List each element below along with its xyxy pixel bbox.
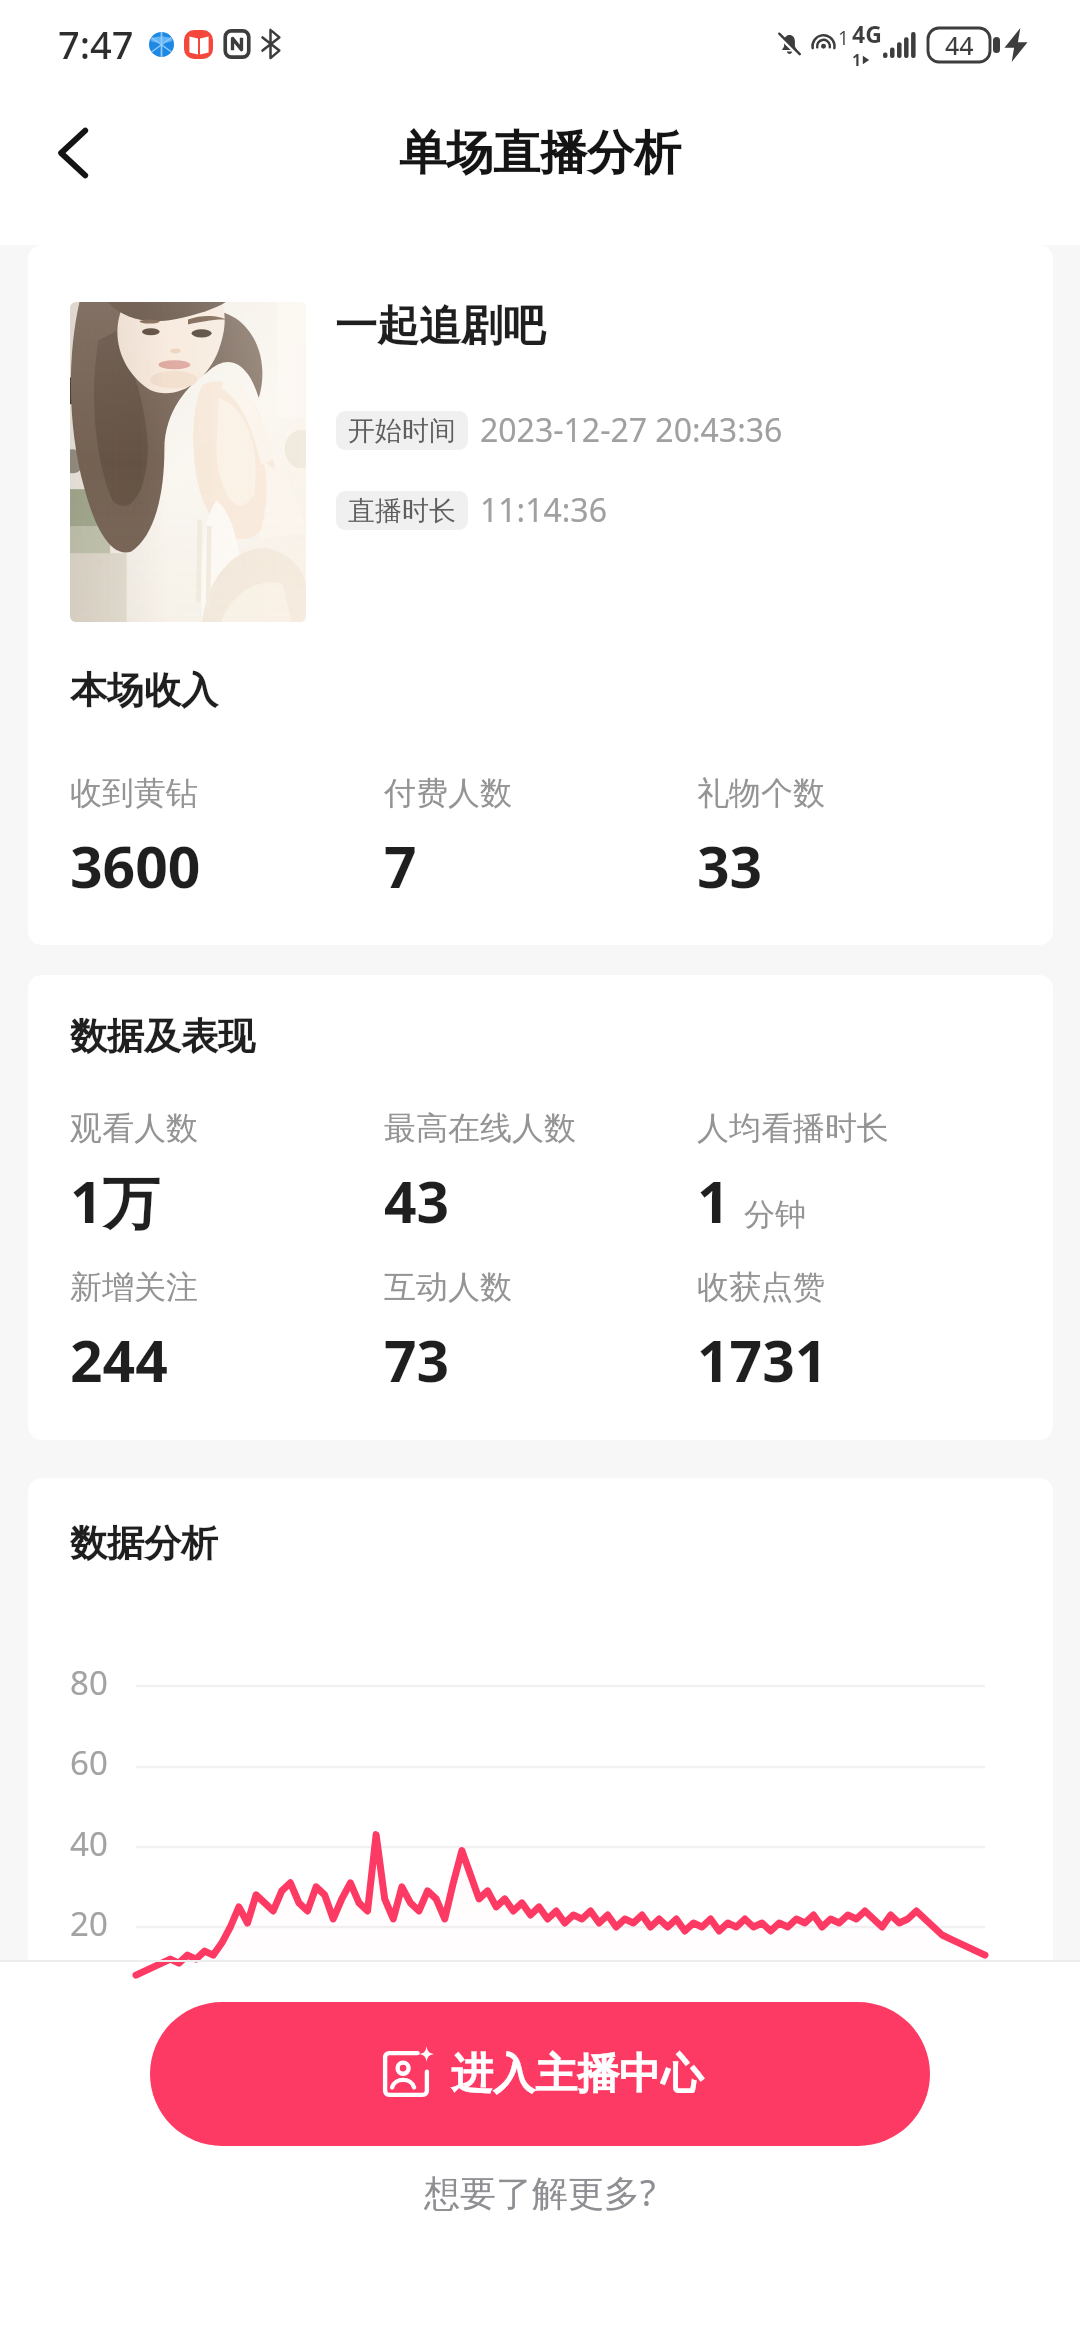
staticText: 20 <box>70 1901 108 1946</box>
button[interactable]: Back <box>28 107 120 199</box>
staticText: 11:14:36 <box>480 488 607 532</box>
staticText: 1万 <box>70 1162 160 1240</box>
staticText: 互动人数 <box>384 1267 512 1307</box>
staticText: 3600 <box>70 827 201 905</box>
staticText: 1 <box>838 25 849 51</box>
staticText: 1 <box>852 49 862 71</box>
staticText: 开始时间 <box>348 414 456 448</box>
staticText: 1731 <box>697 1321 828 1399</box>
staticText: 73 <box>384 1321 450 1399</box>
staticText: 244 <box>70 1321 168 1399</box>
staticText: 44 <box>945 28 974 62</box>
staticText: 一起追剧吧 <box>335 300 545 353</box>
staticText: 4G <box>852 18 882 49</box>
staticText: 43 <box>384 1162 450 1240</box>
button[interactable]: 想要了解更多? <box>400 2160 680 2225</box>
staticText: 数据及表现 <box>70 1013 255 1060</box>
staticText: 2023-12-27 20:43:36 <box>480 408 783 452</box>
staticText: 80 <box>70 1660 108 1705</box>
staticText: 数据分析 <box>70 1520 218 1567</box>
staticText: 40 <box>70 1821 108 1866</box>
staticText: 33 <box>697 827 763 905</box>
staticText: 分钟 <box>744 1195 806 1234</box>
staticText: 1 <box>697 1162 730 1240</box>
staticText: 人均看播时长 <box>697 1108 889 1148</box>
staticText: 单场直播分析 <box>399 124 681 183</box>
button[interactable]: 进入主播中心 <box>150 2002 930 2146</box>
staticText: 新增关注 <box>70 1267 198 1307</box>
staticText: 60 <box>70 1740 108 1785</box>
staticText: 最高在线人数 <box>384 1108 576 1148</box>
staticText: 观看人数 <box>70 1108 198 1148</box>
staticText: 付费人数 <box>384 773 512 813</box>
staticText: 7 <box>384 827 417 905</box>
staticText: 7:47 <box>58 18 134 70</box>
staticText: 礼物个数 <box>697 773 825 813</box>
staticText: 收到黄钻 <box>70 773 198 813</box>
staticText: 进入主播中心 <box>451 2048 703 2101</box>
button[interactable]: 主播资料 <box>56 285 1024 639</box>
staticText: 本场收入 <box>70 667 218 714</box>
staticText: 直播时长 <box>348 494 456 528</box>
staticText: 想要了解更多? <box>424 2168 656 2217</box>
staticText: 收获点赞 <box>697 1267 825 1307</box>
